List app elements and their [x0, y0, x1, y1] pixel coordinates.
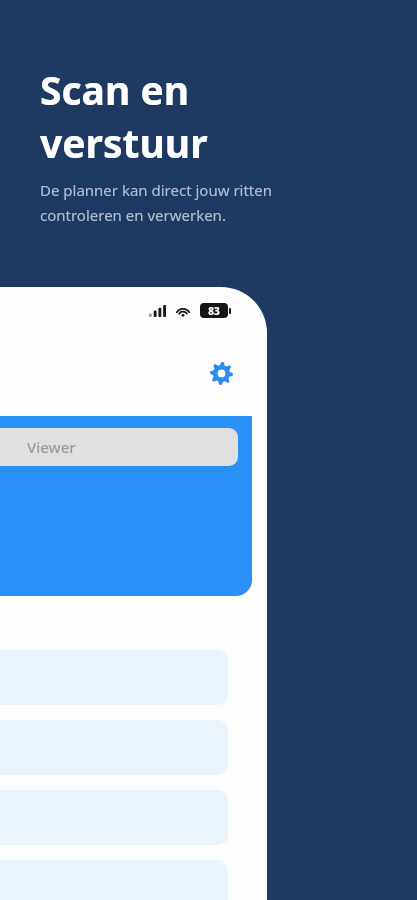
- staticText: verstuur: [40, 116, 208, 169]
- staticText: 83: [208, 304, 220, 318]
- button[interactable]: Viewer: [0, 416, 252, 596]
- staticText: Scan en: [40, 63, 190, 116]
- button[interactable]: Settings: [203, 355, 239, 391]
- button[interactable]: Viewer: [0, 428, 238, 466]
- staticText: Viewer: [27, 437, 76, 457]
- staticText: De planner kan direct jouw ritten contro…: [40, 180, 273, 225]
